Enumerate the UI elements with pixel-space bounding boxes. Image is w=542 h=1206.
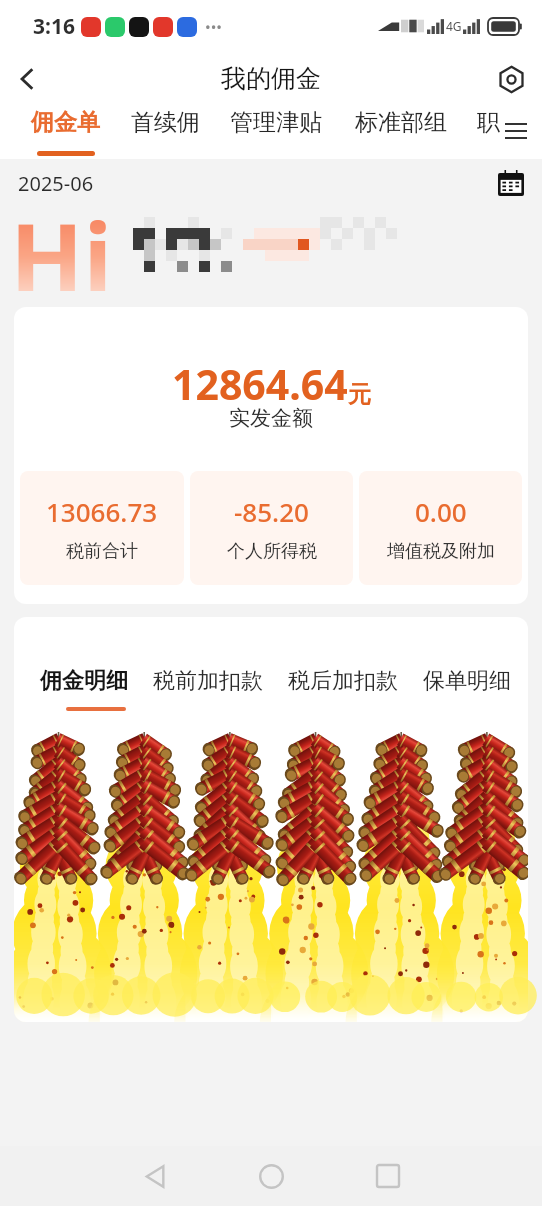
staticText: 0.00 — [415, 494, 467, 529]
staticText: ••• — [205, 17, 222, 37]
staticText: 税前加扣款 — [153, 667, 263, 695]
staticText: 13066.73 — [46, 494, 158, 529]
staticText: 12864.64 — [172, 356, 348, 412]
button[interactable]: 首续佣 — [131, 105, 200, 159]
staticText: 增值税及附加 — [387, 540, 495, 563]
staticText: 佣金明细 — [40, 667, 128, 695]
staticText: 佣金单 — [31, 108, 100, 137]
staticText: 我的佣金 — [221, 63, 321, 94]
button[interactable]: 13066.73 — [20, 471, 184, 585]
button[interactable]: Back — [131, 1152, 179, 1200]
button[interactable]: 税前加扣款 — [153, 667, 263, 695]
button[interactable]: -85.20 — [190, 471, 353, 585]
button[interactable]: Back — [6, 57, 50, 101]
staticText: 元 — [348, 380, 371, 409]
staticText: 实发金额 — [229, 405, 313, 431]
button[interactable]: More tabs — [505, 116, 535, 146]
button[interactable]: 管理津贴 — [230, 105, 322, 159]
staticText: 个人所得税 — [227, 540, 317, 563]
staticText: 2025-06 — [18, 170, 94, 197]
button[interactable]: Recent apps — [364, 1152, 412, 1200]
button[interactable]: 标准部组 — [355, 105, 447, 159]
staticText: 税后加扣款 — [288, 667, 398, 695]
staticText: Hi — [10, 191, 113, 291]
button[interactable]: 保单明细 — [423, 667, 511, 695]
button[interactable]: Select month — [492, 164, 530, 202]
staticText: -85.20 — [234, 494, 309, 529]
staticText: 3:16 — [33, 12, 75, 41]
staticText: 税前合计 — [66, 540, 138, 563]
staticText: 标准部组 — [355, 108, 447, 137]
staticText: 管理津贴 — [230, 108, 322, 137]
staticText: 职 — [477, 108, 500, 137]
staticText: 4G — [446, 18, 462, 34]
button[interactable]: 佣金单 — [31, 105, 100, 159]
staticText: 保单明细 — [423, 667, 511, 695]
button[interactable]: 税后加扣款 — [288, 667, 398, 695]
button[interactable]: 0.00 — [359, 471, 522, 585]
button[interactable]: 职 — [477, 105, 500, 159]
staticText: 首续佣 — [131, 108, 200, 137]
button[interactable]: Home — [247, 1152, 295, 1200]
button[interactable]: Settings — [490, 58, 532, 100]
button[interactable]: 佣金明细 — [40, 667, 128, 711]
